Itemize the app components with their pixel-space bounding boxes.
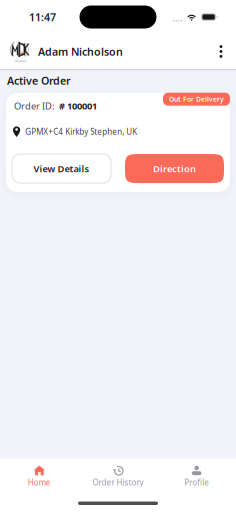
button[interactable]: More options <box>206 34 236 68</box>
staticText: Out For Delivery <box>169 95 224 104</box>
staticText: Home <box>28 477 51 488</box>
staticText: 11:47 <box>29 10 56 24</box>
staticText: Order History <box>92 477 143 488</box>
staticText: Direction <box>153 162 196 175</box>
staticText: Profile <box>184 477 209 488</box>
button[interactable]: Order History <box>79 459 157 488</box>
button[interactable]: View Details <box>12 154 111 183</box>
staticText: Order ID: <box>14 100 59 112</box>
staticText: View Details <box>33 162 89 175</box>
button[interactable]: Profile <box>157 459 236 488</box>
button[interactable]: Home <box>0 459 79 488</box>
staticText: GPMX+C4 Kirkby Stephen, UK <box>25 126 137 137</box>
staticText: Active Order <box>7 73 71 88</box>
staticText: Adam Nicholson <box>38 44 123 59</box>
staticText: # 100001 <box>59 100 97 112</box>
button[interactable]: Direction <box>125 154 224 183</box>
